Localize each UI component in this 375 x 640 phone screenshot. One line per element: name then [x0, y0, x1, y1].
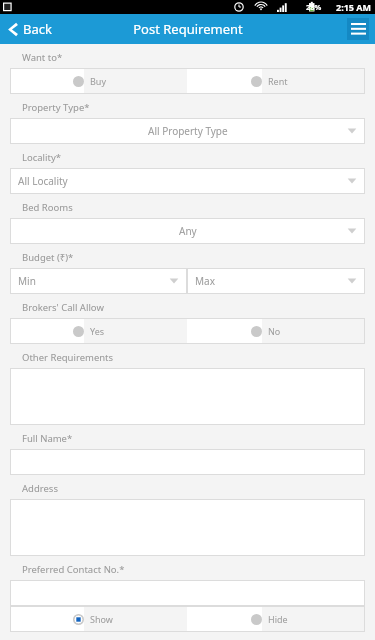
staticText: Post Requirement — [133, 20, 243, 38]
staticText: Max — [195, 274, 215, 288]
staticText: Preferred Contact No.* — [22, 563, 125, 576]
button[interactable]: Rent — [187, 68, 365, 94]
button[interactable]: Back — [0, 17, 60, 41]
staticText: Budget (₹)* — [22, 251, 74, 264]
staticText: Buy — [90, 75, 107, 87]
staticText: Address — [22, 482, 58, 495]
staticText: Property Type* — [22, 101, 90, 114]
staticText: Any — [179, 224, 197, 238]
button[interactable]: All Locality — [10, 168, 365, 194]
button[interactable]: No — [187, 318, 365, 344]
button[interactable]: Max — [187, 268, 365, 294]
staticText: Bed Rooms — [22, 201, 73, 214]
button[interactable]: All Property Type — [10, 118, 365, 144]
button[interactable]: Buy — [10, 68, 187, 94]
button[interactable]: Show — [10, 606, 187, 632]
staticText: All Property Type — [148, 124, 228, 138]
button[interactable] — [10, 368, 365, 425]
staticText: Locality* — [22, 151, 62, 164]
staticText: Back — [23, 20, 52, 38]
staticText: Yes — [90, 325, 105, 337]
staticText: Hide — [268, 613, 288, 625]
staticText: Full Name* — [22, 432, 73, 445]
button[interactable]: Yes — [10, 318, 187, 344]
staticText: Want to* — [22, 51, 63, 64]
button[interactable]: Hide — [187, 606, 365, 632]
staticText: Min — [18, 274, 36, 288]
staticText: Other Requirements — [22, 351, 114, 364]
button[interactable]: Menu — [347, 18, 369, 40]
staticText: Show — [90, 613, 113, 625]
button[interactable] — [10, 580, 365, 606]
button[interactable]: Min — [10, 268, 187, 294]
staticText: 28% — [306, 2, 322, 12]
staticText: All Locality — [18, 174, 68, 188]
button[interactable] — [10, 449, 365, 475]
button[interactable] — [10, 499, 365, 556]
staticText: 2:15 AM — [336, 1, 372, 13]
button[interactable]: Any — [10, 218, 365, 244]
staticText: Brokers' Call Allow — [22, 301, 104, 314]
staticText: Rent — [268, 75, 288, 87]
staticText: No — [268, 325, 281, 337]
